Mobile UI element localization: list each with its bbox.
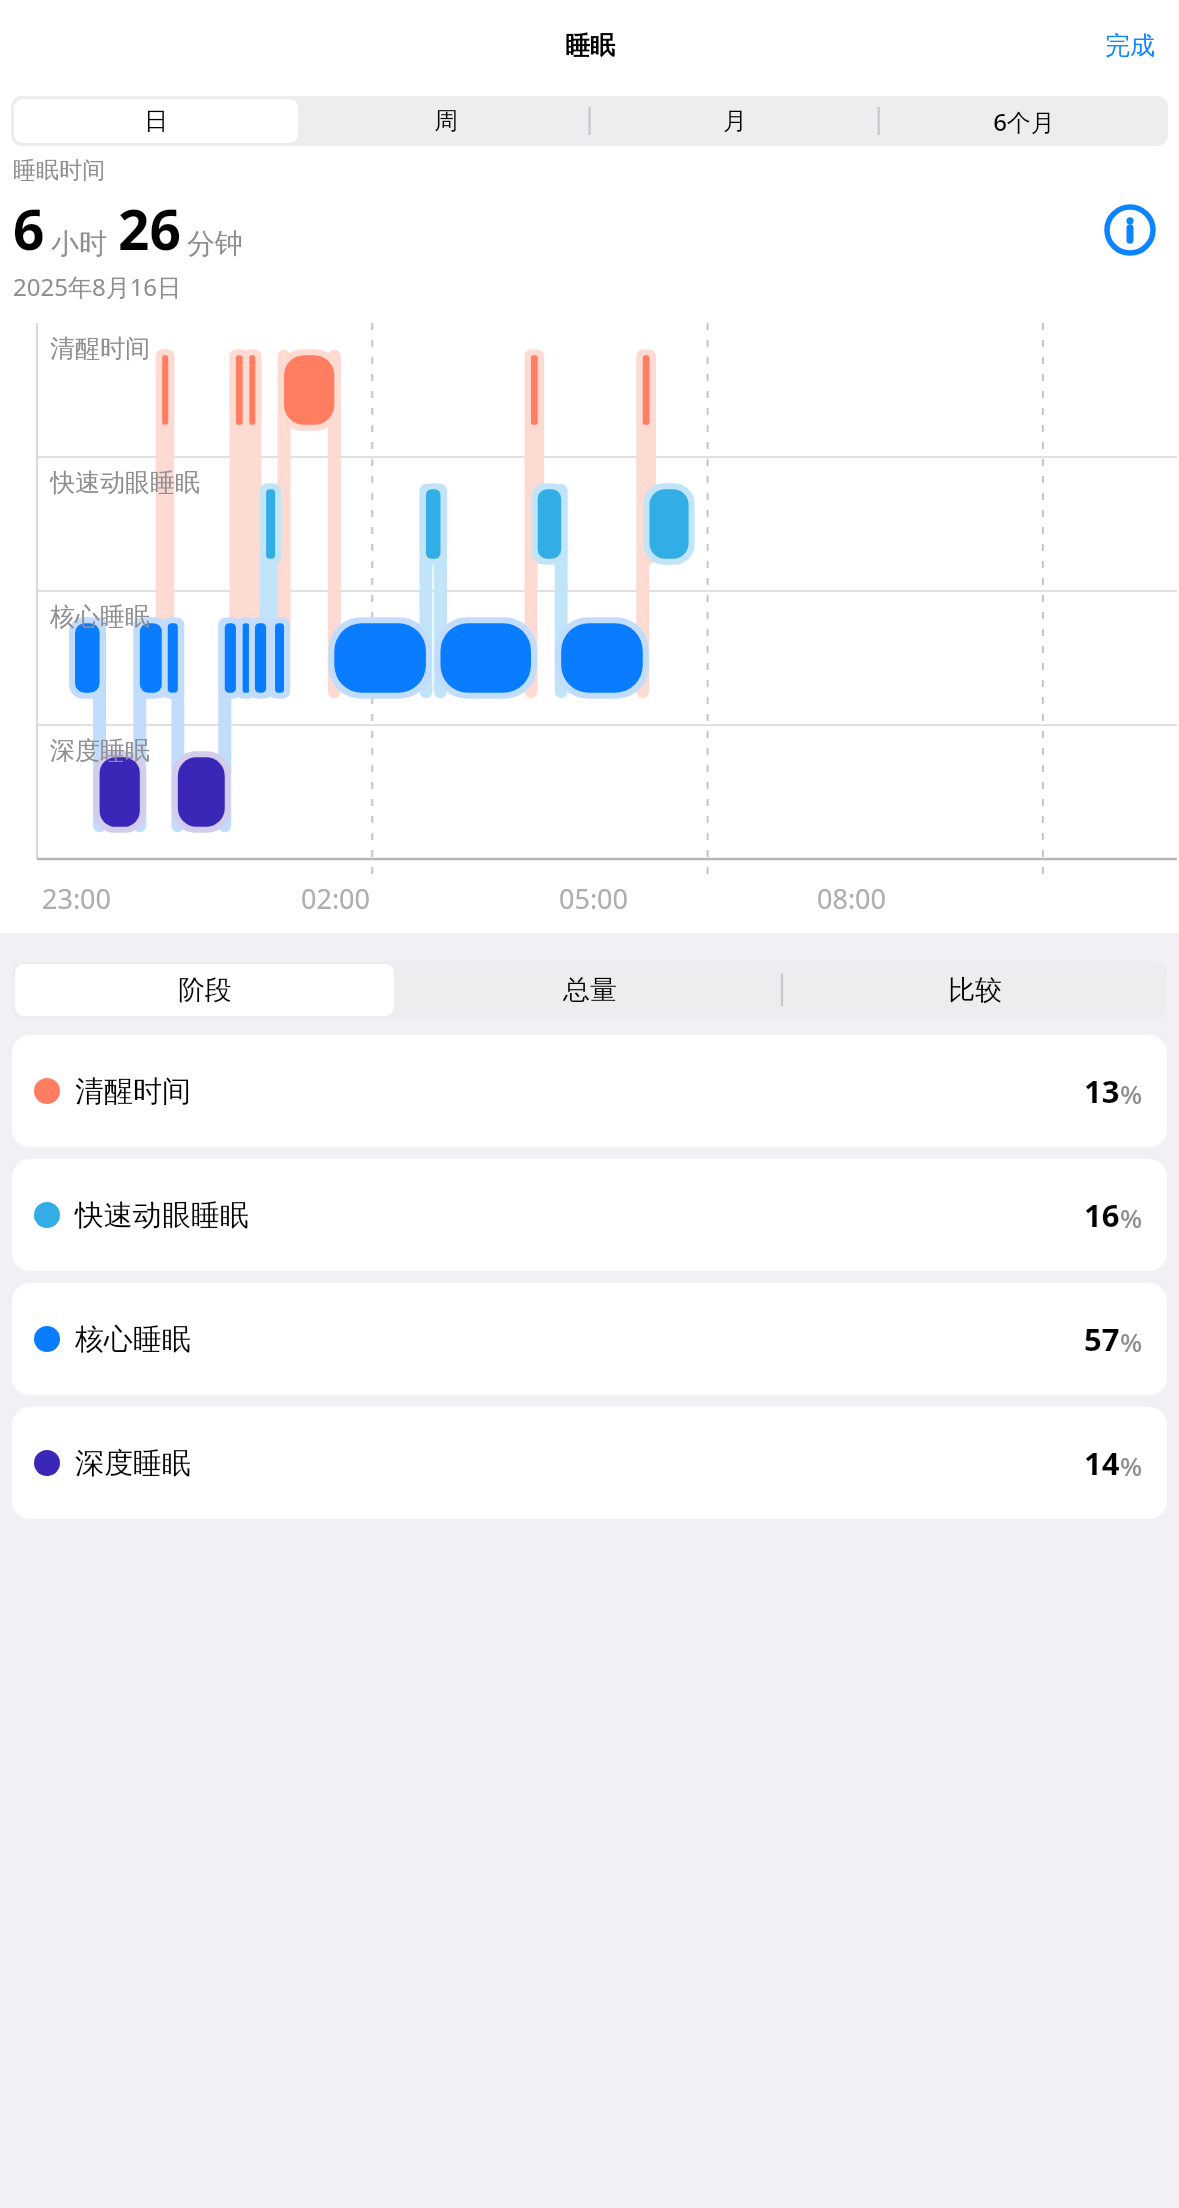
staticText: 14 bbox=[1084, 1442, 1120, 1484]
button[interactable]: 核心睡眠 bbox=[12, 1283, 1167, 1395]
button[interactable]: 完成 bbox=[1081, 18, 1179, 73]
staticText: 26 bbox=[118, 191, 181, 266]
staticText: 快速动眼睡眠 bbox=[75, 1197, 249, 1234]
staticText: % bbox=[1120, 1448, 1143, 1483]
staticText: 阶段 bbox=[178, 973, 232, 1007]
staticText: 月 bbox=[723, 106, 747, 136]
staticText: 核心睡眠 bbox=[75, 1321, 191, 1358]
staticText: 05:00 bbox=[559, 880, 629, 917]
staticText: 睡眠 bbox=[565, 30, 615, 61]
staticText: 核心睡眠 bbox=[50, 601, 150, 632]
staticText: 2025年8月16日 bbox=[13, 270, 182, 303]
staticText: 快速动眼睡眠 bbox=[50, 467, 200, 498]
staticText: 13 bbox=[1084, 1070, 1120, 1112]
staticText: 深度睡眠 bbox=[50, 735, 150, 766]
staticText: 小时 bbox=[51, 226, 107, 261]
staticText: % bbox=[1120, 1324, 1143, 1359]
staticText: 57 bbox=[1084, 1318, 1120, 1360]
staticText: 6 bbox=[13, 191, 45, 266]
staticText: 6个月 bbox=[993, 105, 1055, 138]
button[interactable]: 比较 bbox=[785, 964, 1164, 1016]
staticText: 23:00 bbox=[42, 880, 112, 917]
button[interactable]: 6个月 bbox=[882, 99, 1165, 143]
staticText: 日 bbox=[144, 106, 168, 136]
staticText: 周 bbox=[434, 106, 458, 136]
staticText: 深度睡眠 bbox=[75, 1445, 191, 1482]
staticText: 08:00 bbox=[817, 880, 887, 917]
staticText: % bbox=[1120, 1076, 1143, 1111]
staticText: 清醒时间 bbox=[75, 1073, 191, 1110]
button[interactable]: 阶段 bbox=[15, 964, 394, 1016]
staticText: 02:00 bbox=[301, 880, 371, 917]
button[interactable]: 信息 bbox=[1103, 203, 1157, 257]
staticText: 分钟 bbox=[187, 226, 243, 261]
button[interactable]: 总量 bbox=[400, 964, 779, 1016]
staticText: 睡眠时间 bbox=[13, 156, 105, 185]
staticText: 清醒时间 bbox=[50, 333, 150, 364]
staticText: % bbox=[1120, 1200, 1143, 1235]
button[interactable]: 快速动眼睡眠 bbox=[12, 1159, 1167, 1271]
button[interactable]: 清醒时间 bbox=[12, 1035, 1167, 1147]
staticText: 完成 bbox=[1105, 30, 1155, 61]
button[interactable]: 月 bbox=[593, 99, 876, 143]
staticText: 16 bbox=[1084, 1194, 1120, 1236]
staticText: 比较 bbox=[948, 973, 1002, 1007]
button[interactable]: 日 bbox=[14, 99, 298, 143]
button[interactable]: 周 bbox=[304, 99, 587, 143]
staticText: 总量 bbox=[563, 973, 617, 1007]
button[interactable]: 深度睡眠 bbox=[12, 1407, 1167, 1519]
